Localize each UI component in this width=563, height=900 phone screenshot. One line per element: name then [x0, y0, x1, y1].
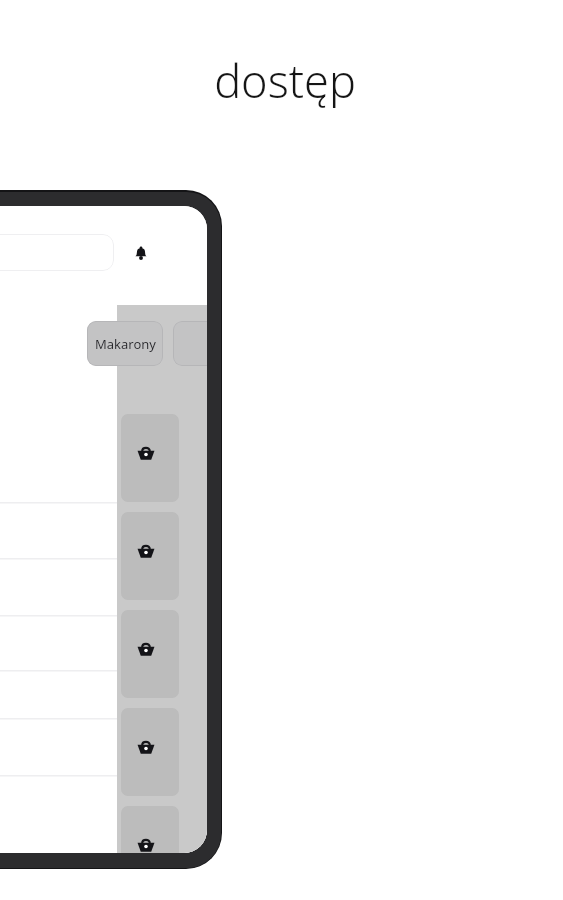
- button[interactable]: Add to basket: [121, 610, 179, 698]
- button[interactable]: [0, 234, 114, 271]
- button[interactable]: Add to basket: [121, 806, 179, 853]
- button[interactable]: Add to basket: [121, 708, 179, 796]
- button[interactable]: Add to basket: [121, 512, 179, 600]
- button[interactable]: Notifications: [122, 234, 160, 272]
- button[interactable]: Add to basket: [121, 414, 179, 502]
- staticText: dostęp: [214, 50, 356, 108]
- button[interactable]: Makarony: [87, 321, 163, 366]
- staticText: Makarony: [95, 335, 156, 353]
- button[interactable]: [173, 321, 207, 366]
